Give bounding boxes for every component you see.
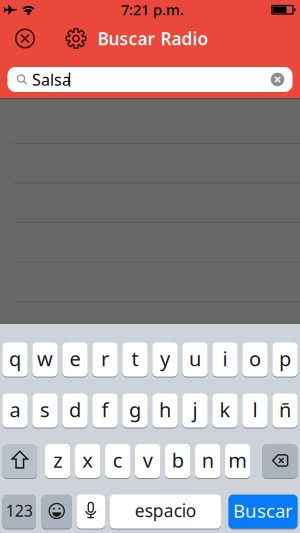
staticText: f [101, 396, 108, 423]
staticText: w [37, 345, 53, 372]
staticText: r [101, 345, 109, 372]
staticText: i [222, 345, 227, 372]
button[interactable]: l [242, 393, 268, 428]
button[interactable]: Clear text [269, 71, 285, 87]
staticText: m [228, 447, 247, 473]
button[interactable]: g [122, 393, 148, 428]
staticText: Salsa [32, 69, 71, 90]
staticText: ñ [279, 396, 291, 423]
button[interactable]: y [152, 342, 178, 377]
button[interactable]: d [62, 393, 88, 428]
button[interactable]: 123 [2, 494, 36, 529]
button[interactable]: n [195, 443, 220, 478]
button[interactable]: q [2, 342, 28, 377]
button[interactable]: e [62, 342, 88, 377]
button[interactable]: i [212, 342, 238, 377]
button[interactable]: b [165, 443, 190, 478]
staticText: c [113, 447, 123, 473]
button[interactable]: Emoji [41, 494, 72, 529]
staticText: Buscar [233, 498, 293, 523]
staticText: y [160, 345, 170, 372]
button[interactable]: z [45, 443, 70, 478]
staticText: n [202, 447, 214, 473]
staticText: l [252, 396, 257, 423]
button[interactable]: Shift [3, 443, 37, 478]
staticText: b [172, 447, 184, 473]
button[interactable]: u [182, 342, 208, 377]
button[interactable]: v [135, 443, 160, 478]
button[interactable]: Delete [262, 443, 297, 478]
staticText: Buscar Radio [97, 27, 208, 50]
staticText: g [129, 396, 141, 423]
staticText: a [9, 396, 20, 423]
button[interactable]: Buscar [228, 494, 297, 529]
button[interactable]: r [92, 342, 118, 377]
staticText: z [53, 447, 62, 473]
button[interactable]: f [92, 393, 118, 428]
button[interactable]: o [242, 342, 268, 377]
button[interactable]: a [2, 393, 28, 428]
staticText: t [131, 345, 138, 372]
button[interactable]: h [152, 393, 178, 428]
staticText: p [279, 345, 291, 372]
button[interactable]: ñ [272, 393, 298, 428]
button[interactable]: Dictate [76, 494, 105, 529]
button[interactable]: espacio [109, 494, 221, 529]
staticText: o [249, 345, 261, 372]
staticText: k [219, 396, 230, 423]
staticText: d [69, 396, 81, 423]
button[interactable]: m [225, 443, 250, 478]
button[interactable]: x [75, 443, 100, 478]
button[interactable]: p [272, 342, 298, 377]
staticText: 7:21 p.m. [121, 0, 184, 19]
staticText: espacio [135, 499, 196, 522]
staticText: 123 [6, 500, 33, 521]
button[interactable]: w [32, 342, 58, 377]
button[interactable]: c [105, 443, 130, 478]
button[interactable]: s [32, 393, 58, 428]
staticText: u [189, 345, 201, 372]
button[interactable]: t [122, 342, 148, 377]
staticText: h [159, 396, 171, 423]
button[interactable]: k [212, 393, 238, 428]
button[interactable]: Search [7, 67, 292, 92]
staticText: v [143, 447, 153, 473]
staticText: q [9, 345, 21, 372]
button[interactable]: j [182, 393, 208, 428]
staticText: j [192, 396, 197, 423]
staticText: e [69, 345, 80, 372]
button[interactable]: Settings [63, 26, 88, 51]
staticText: s [40, 396, 50, 423]
staticText: x [82, 447, 93, 473]
button[interactable]: Close [12, 26, 37, 51]
